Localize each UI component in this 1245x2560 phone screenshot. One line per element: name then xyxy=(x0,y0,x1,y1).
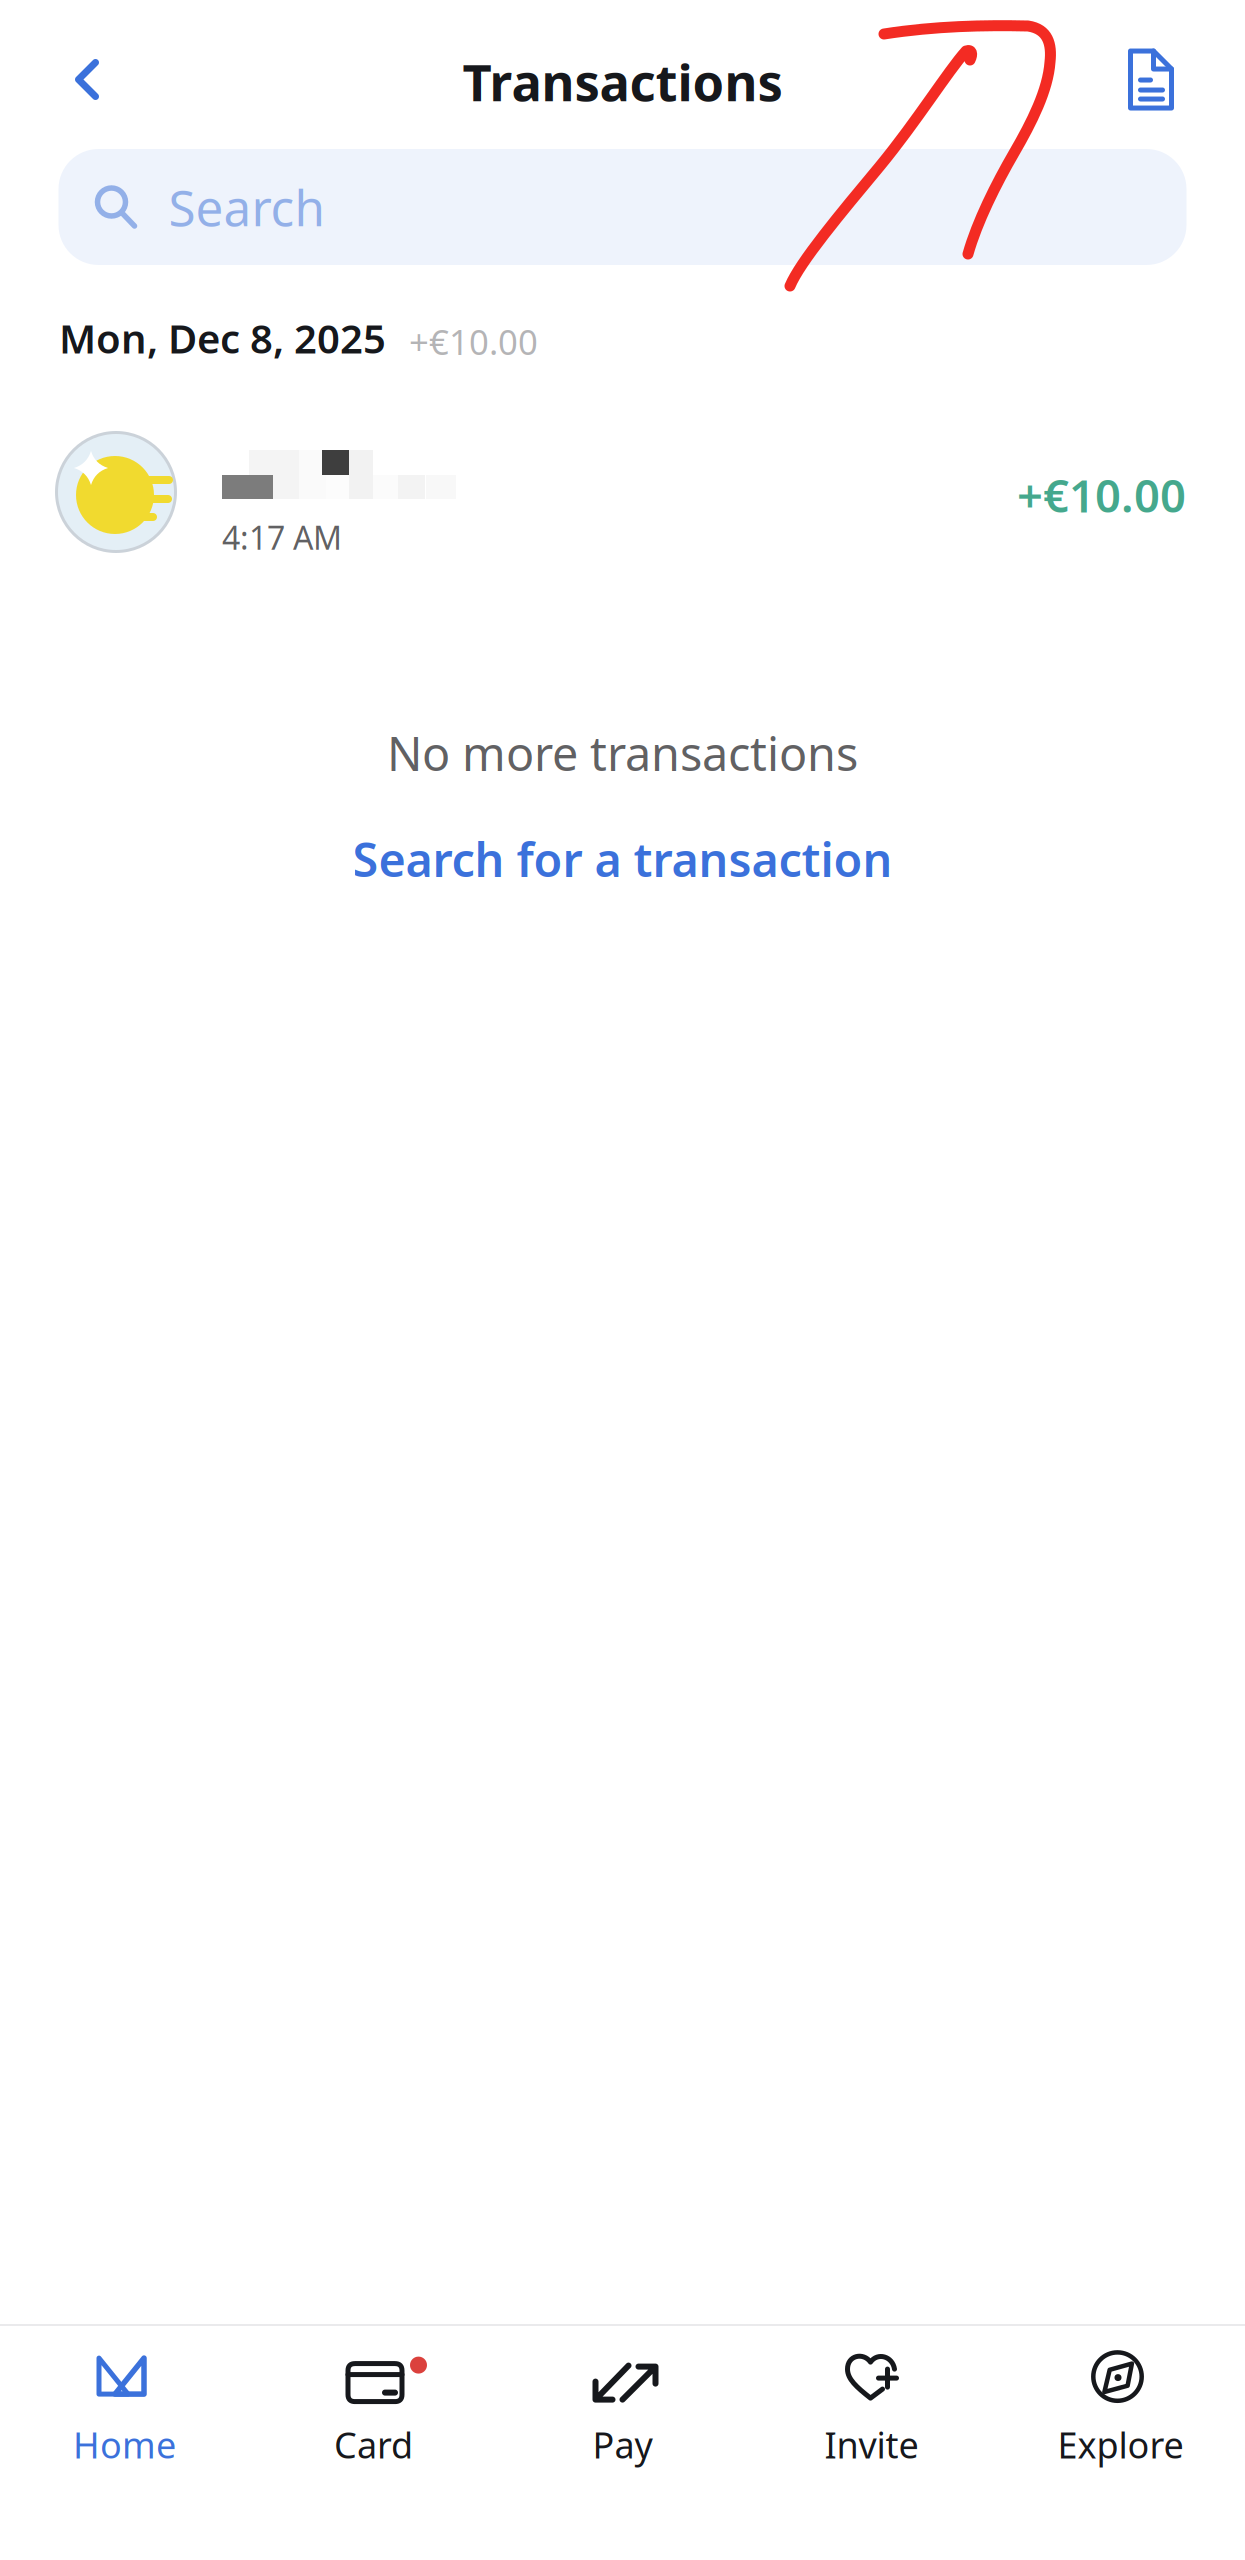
staticText: No more transactions xyxy=(387,722,858,784)
button[interactable]: Search for a transaction xyxy=(312,814,932,904)
staticText: 4:17 AM xyxy=(222,516,342,558)
staticText: Search xyxy=(168,174,324,240)
staticText: Transactions xyxy=(462,48,782,115)
button[interactable]: Home xyxy=(0,2326,249,2466)
button[interactable]: 4:17 AM xyxy=(0,432,1245,552)
staticText: Pay xyxy=(592,2421,652,2468)
button[interactable]: Invite xyxy=(747,2326,996,2466)
button[interactable]: Pay xyxy=(498,2326,747,2466)
staticText: Home xyxy=(73,2421,176,2468)
staticText: Mon, Dec 8, 2025 xyxy=(59,311,386,364)
staticText: Card xyxy=(334,2421,413,2468)
button[interactable]: Statement xyxy=(1091,19,1211,139)
button[interactable]: Back xyxy=(27,19,147,139)
staticText: Invite xyxy=(824,2421,918,2468)
button[interactable]: Card xyxy=(249,2326,498,2466)
staticText: +€10.00 xyxy=(1017,465,1186,525)
button[interactable]: Search xyxy=(58,149,1186,265)
staticText: +€10.00 xyxy=(409,318,538,364)
button[interactable]: Explore xyxy=(996,2326,1245,2466)
staticText: Search for a transaction xyxy=(352,828,892,890)
staticText: Explore xyxy=(1057,2421,1183,2468)
